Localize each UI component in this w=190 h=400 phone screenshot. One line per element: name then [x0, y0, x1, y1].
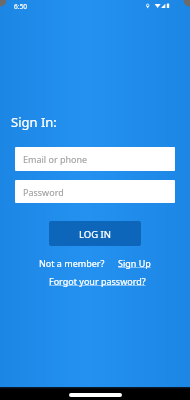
staticText: Sign In: — [11, 113, 57, 131]
button[interactable]: Email or phone — [15, 147, 175, 171]
staticText: Password — [23, 186, 64, 198]
button[interactable]: Password — [15, 180, 175, 203]
button[interactable]: Forgot your password? — [49, 275, 146, 287]
staticText: Forgot your password? — [49, 275, 146, 287]
staticText: 6:50 — [14, 2, 27, 11]
button[interactable]: LOG IN — [49, 221, 141, 246]
other: Status icons — [145, 0, 171, 14]
button[interactable]: Home gesture bar — [69, 393, 122, 397]
staticText: Sign Up — [118, 257, 151, 269]
staticText: LOG IN — [79, 228, 112, 241]
staticText: Not a member? — [39, 257, 105, 269]
button[interactable]: Sign Up — [118, 257, 151, 269]
staticText: Email or phone — [23, 153, 88, 165]
